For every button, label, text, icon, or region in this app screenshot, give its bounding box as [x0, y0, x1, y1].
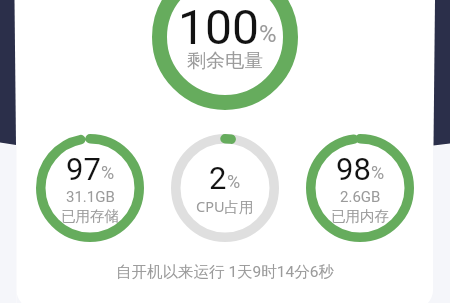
staticText: %: [227, 171, 241, 192]
staticText: 已用存储: [61, 207, 119, 225]
staticText: 97: [66, 151, 101, 187]
other: 剩余电量 100%: [152, 0, 298, 110]
staticText: 31.1GB: [66, 188, 115, 206]
staticText: 剩余电量: [187, 49, 263, 73]
staticText: 2.6GB: [340, 188, 381, 206]
button[interactable]: 已用存储: [36, 134, 144, 242]
staticText: 自开机以来运行 1天9时14分6秒: [0, 262, 450, 282]
button[interactable]: 已用内存: [306, 134, 414, 242]
staticText: %: [371, 162, 385, 183]
staticText: 已用内存: [331, 207, 389, 225]
staticText: CPU占用: [196, 196, 254, 216]
staticText: %: [259, 20, 277, 48]
staticText: 98: [336, 151, 371, 187]
staticText: %: [101, 162, 115, 183]
staticText: 100: [178, 0, 259, 55]
button[interactable]: CPU占用: [171, 134, 279, 242]
staticText: 2: [209, 160, 227, 196]
